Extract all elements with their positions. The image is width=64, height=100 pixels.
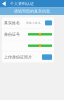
staticText: 身份证号 [4,32,20,37]
staticText: 个人资料认证 [10,1,34,6]
button[interactable]: Back [0,0,8,7]
staticText: 请输入姓名 [26,21,41,25]
button[interactable]: Action [45,20,52,25]
button[interactable]: Submit [42,54,52,60]
staticText: 请填写您的真实信息 [14,9,50,14]
staticText: 上传身份证照片 [4,55,32,59]
staticText: 真实姓名 [4,20,20,25]
